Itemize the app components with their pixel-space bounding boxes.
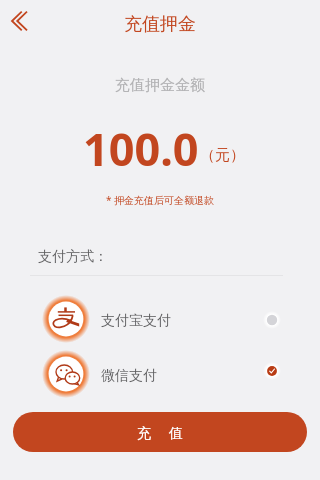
staticText: 值 xyxy=(169,425,183,443)
staticText: 100.0 xyxy=(83,118,199,179)
staticText: 充值押金 xyxy=(124,13,196,36)
staticText: * 押金充值后可全额退款 xyxy=(106,193,215,207)
staticText: （元） xyxy=(200,146,245,165)
button[interactable]: 微信支付 xyxy=(0,350,320,398)
staticText: 充值押金金额 xyxy=(115,76,205,95)
staticText: 支付宝支付 xyxy=(101,312,171,330)
staticText: 支付方式： xyxy=(38,248,108,266)
button[interactable]: 支付宝支付 xyxy=(0,295,320,343)
staticText: 充 xyxy=(137,425,151,443)
button[interactable]: 充 xyxy=(13,412,307,452)
button[interactable]: Back xyxy=(5,6,33,34)
staticText: 微信支付 xyxy=(101,367,157,385)
